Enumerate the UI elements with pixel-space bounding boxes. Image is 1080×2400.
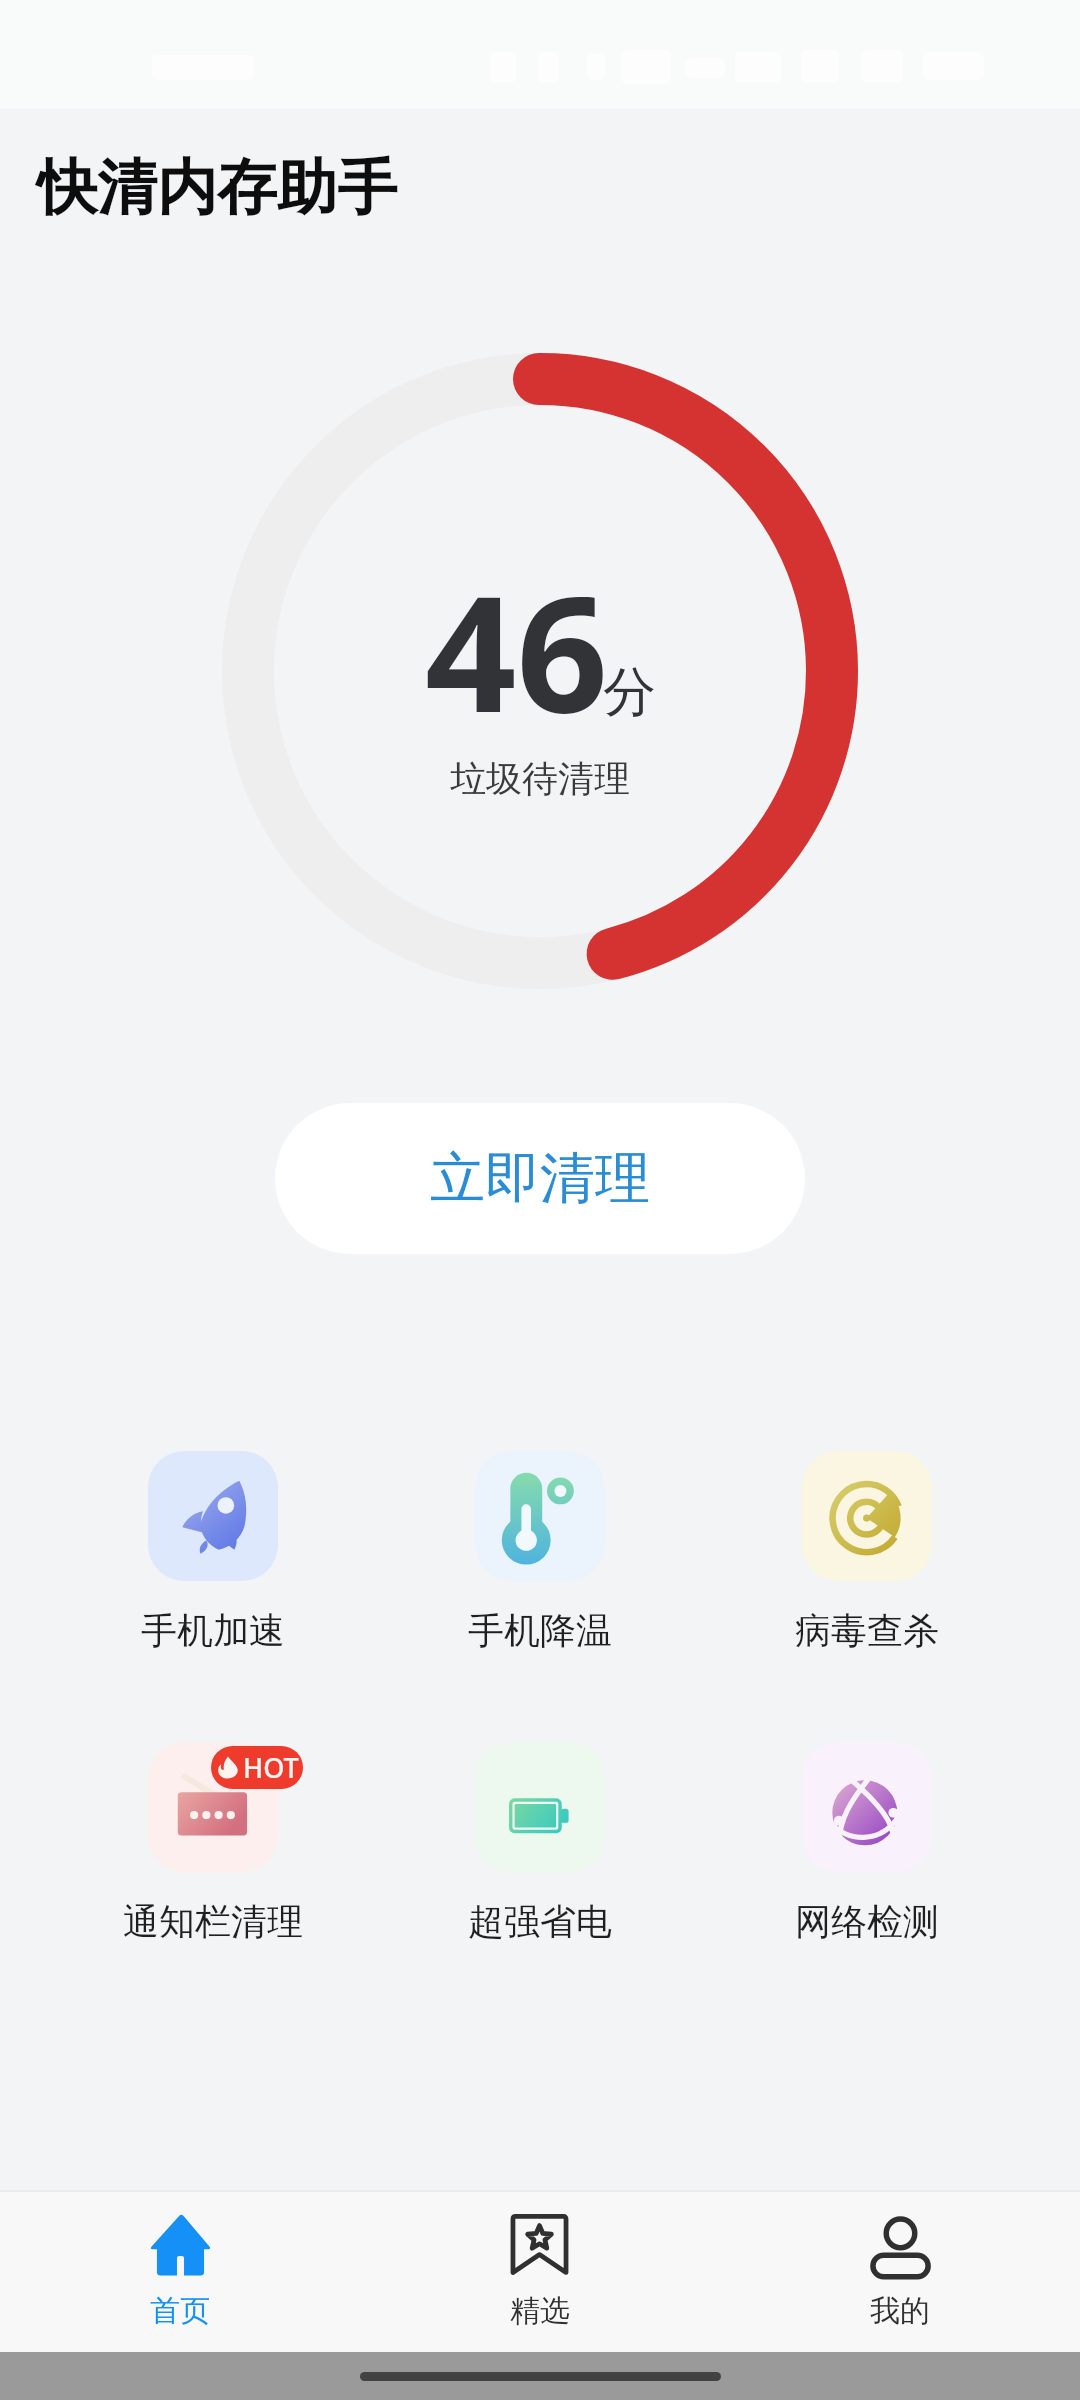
staticText: 通知栏清理 <box>123 1899 303 1944</box>
staticText: 病毒查杀 <box>795 1608 939 1653</box>
staticText: 首页 <box>150 2292 210 2330</box>
staticText: 网络检测 <box>795 1899 939 1944</box>
button[interactable]: 我的 <box>720 2192 1080 2352</box>
button[interactable]: 超强省电 <box>376 1742 703 1944</box>
staticText: 立即清理 <box>430 1144 650 1213</box>
staticText: 精选 <box>510 2292 570 2330</box>
button[interactable]: 病毒查杀 <box>703 1451 1030 1653</box>
staticText: HOT <box>243 1749 299 1786</box>
staticText: 46 <box>425 541 609 759</box>
button[interactable]: 手机加速 <box>50 1451 376 1653</box>
staticText: 我的 <box>870 2292 930 2330</box>
button[interactable]: 网络检测 <box>703 1742 1030 1944</box>
staticText: 超强省电 <box>468 1899 612 1944</box>
button[interactable]: 立即清理 <box>275 1103 805 1254</box>
button[interactable]: 首页 <box>0 2192 360 2352</box>
button[interactable]: 手机降温 <box>376 1451 703 1653</box>
staticText: 手机加速 <box>141 1608 285 1653</box>
staticText: 快清内存助手 <box>37 150 397 226</box>
button[interactable]: 通知栏清理 <box>50 1742 376 1944</box>
staticText: 分 <box>603 659 656 726</box>
staticText: 垃圾待清理 <box>450 756 630 801</box>
staticText: 手机降温 <box>468 1608 612 1653</box>
button[interactable]: 精选 <box>360 2192 720 2352</box>
